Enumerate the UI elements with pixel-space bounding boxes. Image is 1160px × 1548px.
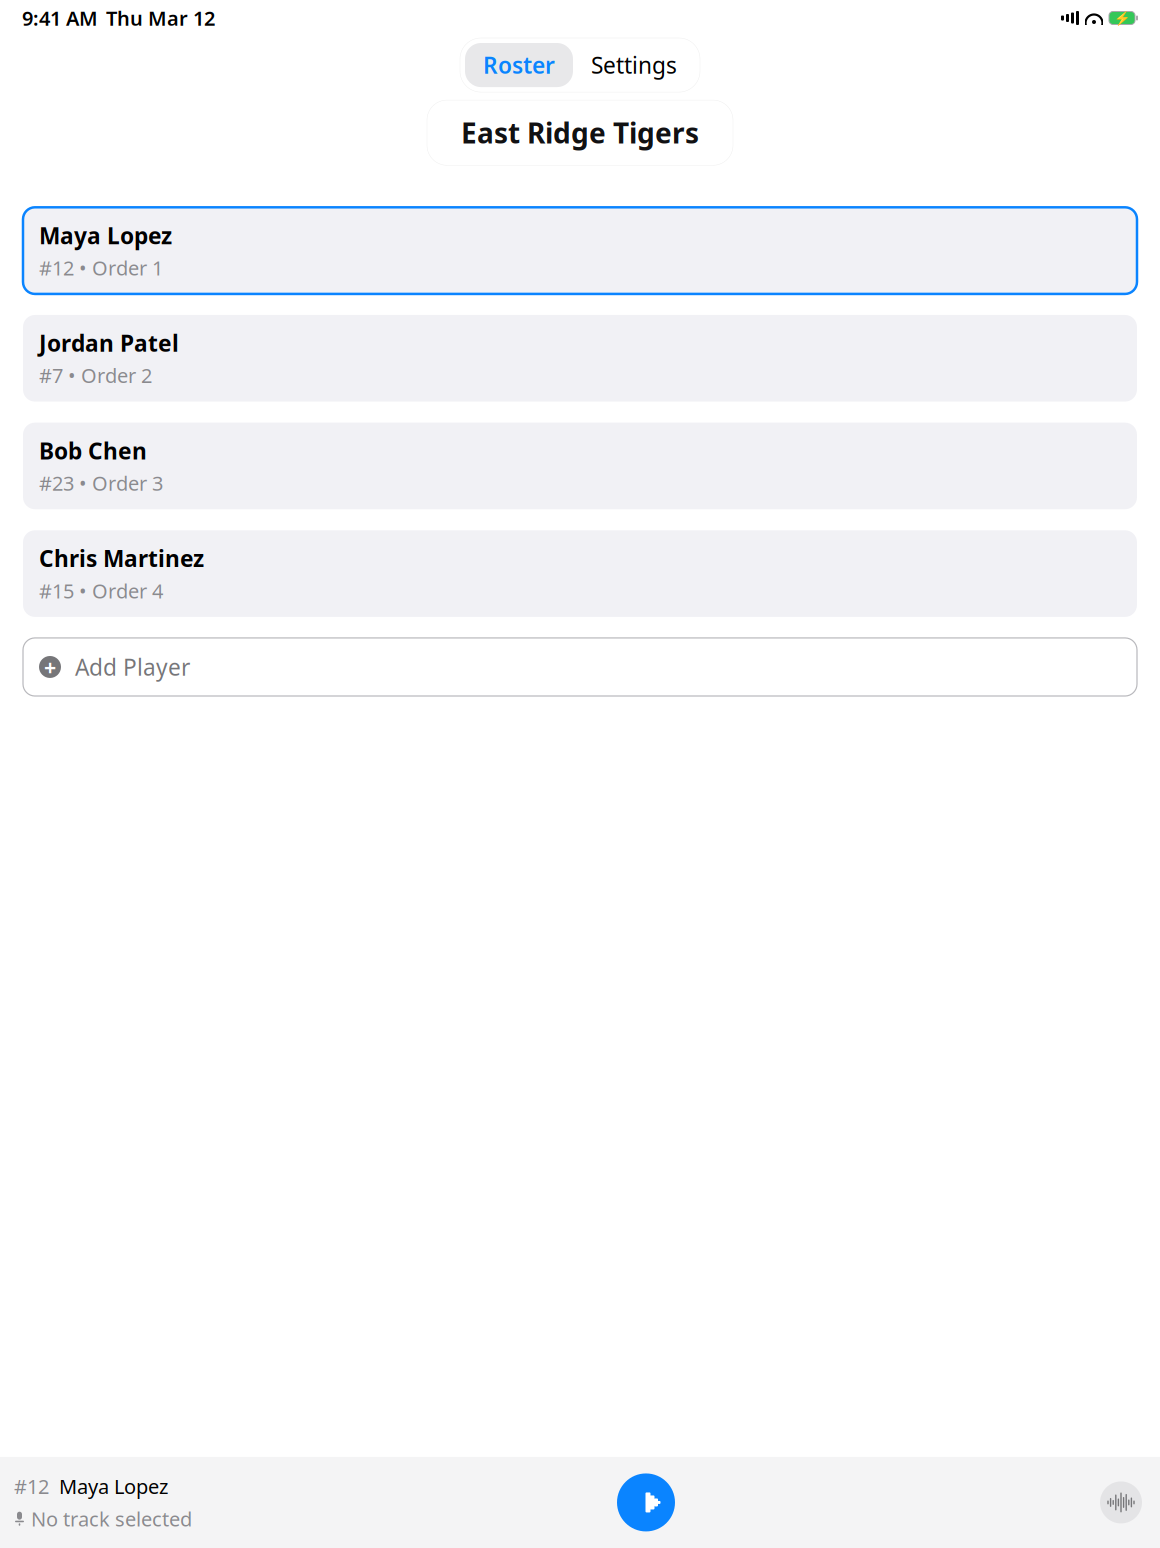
staticText: 9:41 AM: [22, 5, 98, 31]
staticText: Maya Lopez: [59, 1473, 168, 1499]
staticText: No track selected: [31, 1505, 192, 1532]
button[interactable]: Chris Martinez: [23, 530, 1137, 617]
button[interactable]: Bob Chen: [23, 423, 1137, 509]
button[interactable]: Maya Lopez: [23, 207, 1137, 294]
staticText: #12: [14, 1473, 49, 1499]
button[interactable]: Settings: [573, 43, 695, 87]
staticText: +: [44, 653, 56, 681]
staticText: Bob Chen: [39, 436, 147, 466]
button[interactable]: Waveform: [1100, 1481, 1142, 1523]
staticText: Add Player: [75, 652, 190, 682]
staticText: Jordan Patel: [39, 328, 179, 358]
staticText: #23 • Order 3: [39, 470, 163, 496]
staticText: ⚡: [1113, 10, 1130, 26]
staticText: Thu Mar 12: [106, 5, 215, 31]
staticText: #15 • Order 4: [39, 577, 163, 604]
staticText: #12 • Order 1: [39, 254, 163, 281]
button[interactable]: Roster: [465, 43, 573, 87]
staticText: Chris Martinez: [39, 543, 204, 573]
staticText: #7 • Order 2: [39, 362, 152, 389]
staticText: East Ridge Tigers: [461, 114, 699, 151]
staticText: Maya Lopez: [39, 220, 172, 250]
button[interactable]: Play: [617, 1473, 675, 1531]
staticText: Roster: [483, 50, 555, 80]
button[interactable]: Jordan Patel: [23, 315, 1137, 402]
staticText: Settings: [591, 50, 677, 80]
button[interactable]: +: [23, 638, 1137, 696]
